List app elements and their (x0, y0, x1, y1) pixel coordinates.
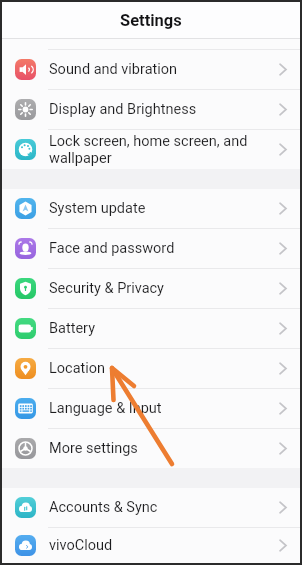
staticText: Battery (49, 320, 95, 337)
staticText: Display and Brightness (49, 101, 197, 118)
button[interactable]: System update (2, 189, 300, 228)
staticText: System update (49, 200, 146, 217)
button[interactable]: More settings (2, 429, 300, 468)
staticText: wallpaper (49, 150, 112, 167)
staticText: vivoCloud (49, 537, 113, 554)
staticText: Lock screen, home screen, and (49, 133, 248, 150)
button[interactable]: vivoCloud (2, 528, 300, 563)
button[interactable]: Lock screen, home screen, and (2, 130, 300, 169)
button[interactable]: Face and password (2, 229, 300, 268)
button[interactable]: Display and Brightness (2, 90, 300, 129)
staticText: Face and password (49, 240, 175, 257)
button[interactable]: Language & Input (2, 389, 300, 428)
staticText: Language & Input (49, 400, 162, 417)
button[interactable]: Accounts & Sync (2, 488, 300, 527)
button[interactable]: Sound and vibration (2, 50, 300, 89)
staticText: Security & Privacy (49, 280, 164, 297)
staticText: Accounts & Sync (49, 499, 158, 516)
button[interactable]: Security & Privacy (2, 269, 300, 308)
button[interactable]: Location (2, 349, 300, 388)
staticText: More settings (49, 440, 138, 457)
staticText: Settings (120, 11, 182, 30)
button[interactable]: Battery (2, 309, 300, 348)
staticText: Sound and vibration (49, 61, 178, 78)
staticText: Location (49, 360, 106, 377)
